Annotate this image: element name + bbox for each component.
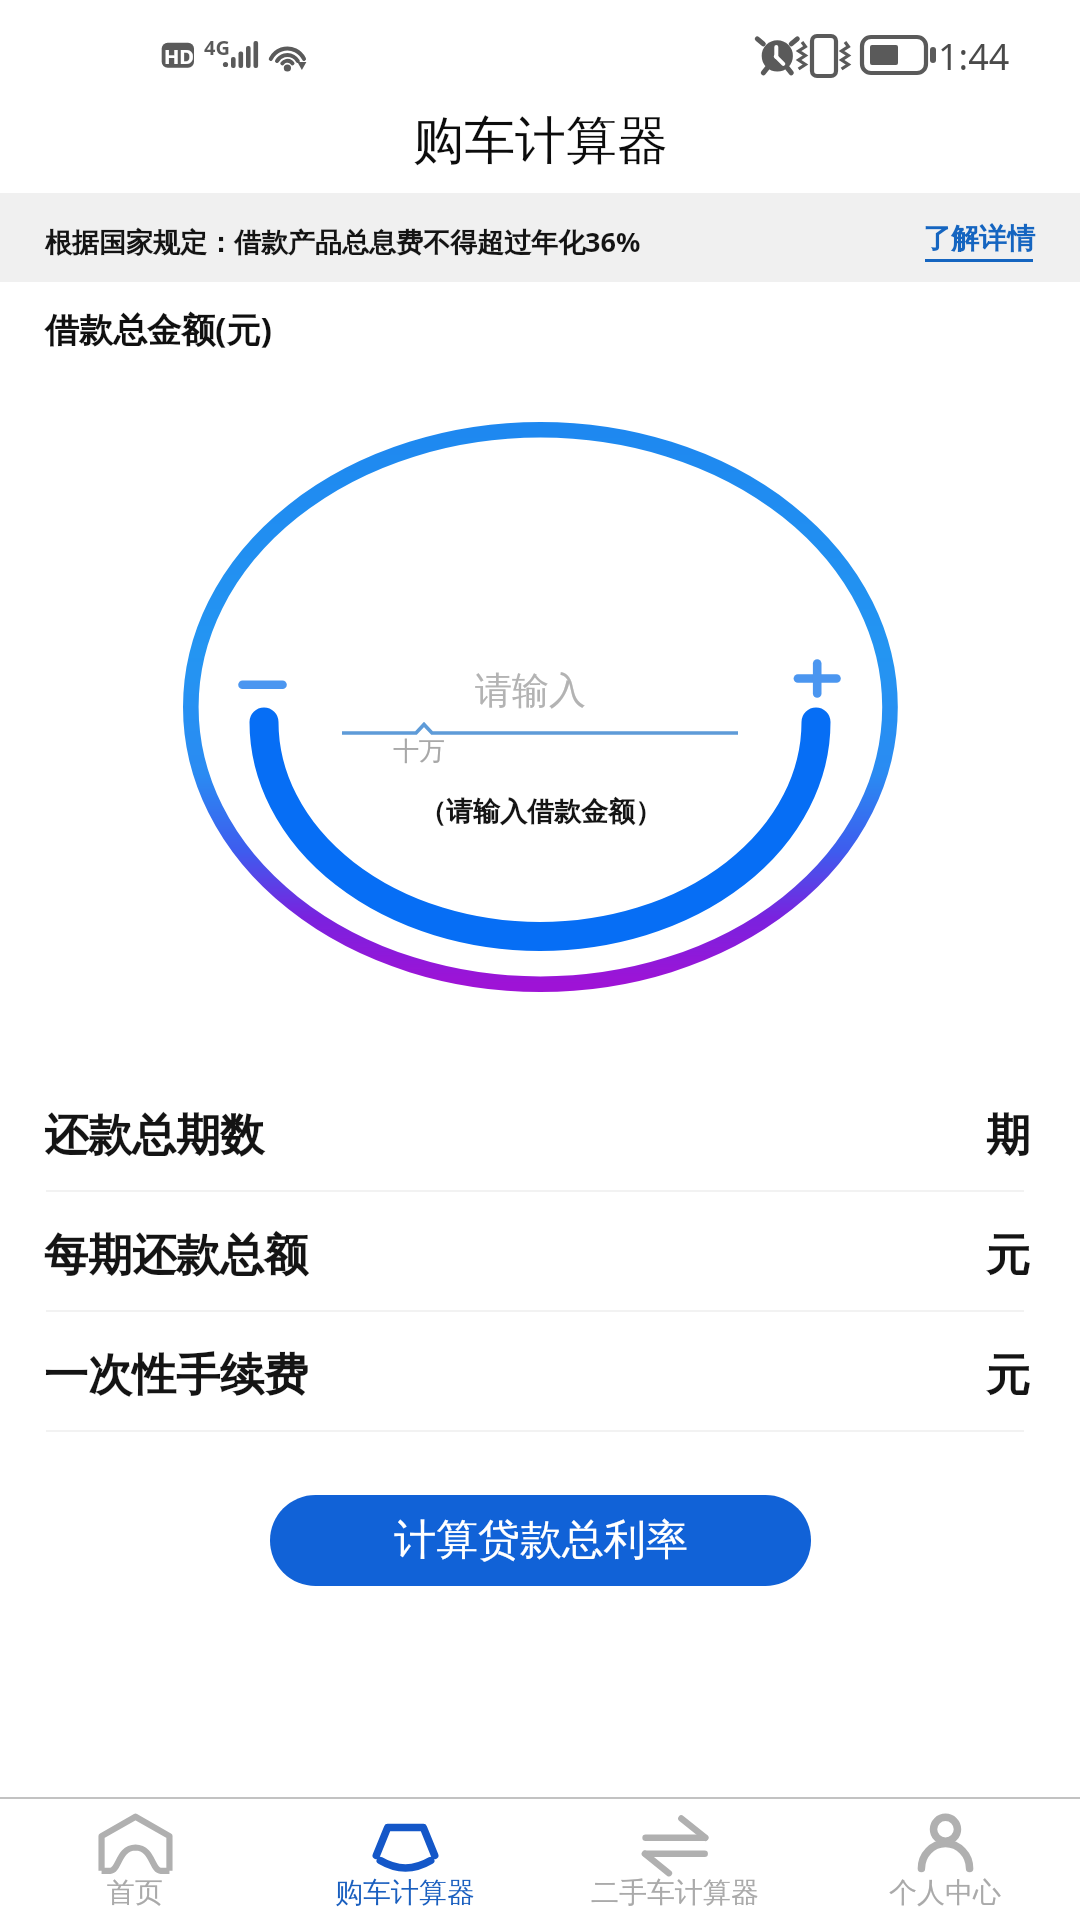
staticText: 4G — [204, 34, 230, 61]
staticText: 个人中心 — [889, 1875, 1001, 1910]
button[interactable]: 增加金额 — [778, 640, 858, 718]
other: 购车计算器 — [369, 1815, 442, 1872]
button[interactable]: 请输入 — [342, 660, 738, 736]
staticText: （请输入借款金额） — [419, 795, 662, 829]
other: 首页 — [99, 1815, 172, 1872]
button[interactable]: 还款总期数 — [0, 1072, 1080, 1192]
staticText: 了解详情 — [923, 221, 1035, 256]
button[interactable]: 一次性手续费 — [0, 1312, 1080, 1432]
staticText: 根据国家规定：借款产品总息费不得超过年化36% — [45, 223, 641, 260]
button[interactable]: 首页 — [0, 1799, 270, 1920]
staticText: 首页 — [107, 1875, 163, 1910]
staticText: 计算贷款总利率 — [394, 1514, 688, 1567]
staticText: 一次性手续费 — [44, 1348, 308, 1403]
staticText: HD — [164, 43, 194, 70]
staticText: 十万 — [393, 735, 445, 768]
button[interactable]: 了解详情 — [923, 221, 1035, 262]
button[interactable]: 每期还款总额 — [0, 1192, 1080, 1312]
staticText: 二手车计算器 — [591, 1875, 759, 1910]
button[interactable]: 个人中心 — [810, 1799, 1080, 1920]
staticText: 请输入 — [475, 667, 586, 714]
staticText: 借款总金额(元) — [45, 306, 273, 352]
staticText: 1:44 — [938, 32, 1010, 81]
button[interactable]: 购车计算器 — [270, 1799, 540, 1920]
button[interactable]: 二手车计算器 — [540, 1799, 810, 1920]
staticText: 购车计算器 — [413, 109, 668, 173]
button[interactable]: 计算贷款总利率 — [270, 1495, 811, 1586]
button[interactable]: 减少金额 — [222, 646, 302, 724]
other: 二手车计算器 — [639, 1815, 712, 1872]
other: 个人中心 — [909, 1815, 982, 1872]
staticText: 购车计算器 — [335, 1875, 475, 1910]
staticText: 每期还款总额 — [44, 1228, 308, 1283]
staticText: 元 — [986, 1348, 1030, 1403]
staticText: 还款总期数 — [44, 1108, 264, 1163]
staticText: 元 — [986, 1228, 1030, 1283]
staticText: 期 — [986, 1108, 1030, 1163]
